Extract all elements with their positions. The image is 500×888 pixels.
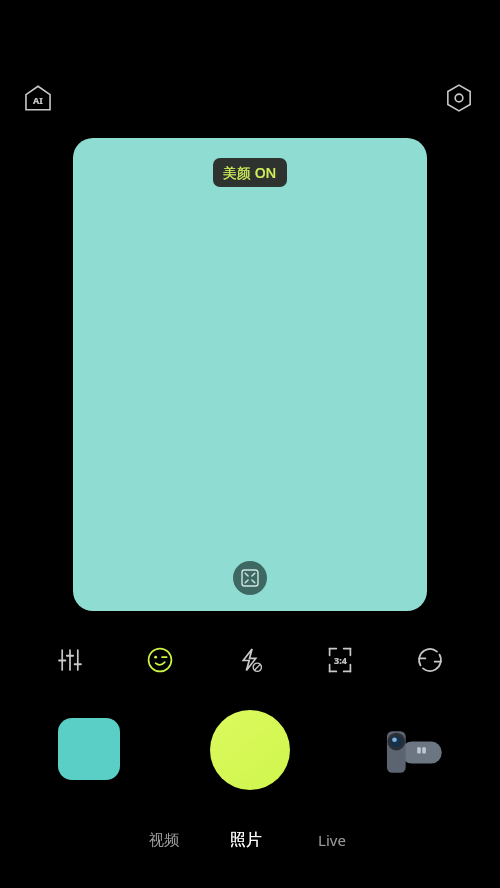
staticText: 照片 <box>230 830 262 850</box>
staticText: 3:4 <box>334 654 347 666</box>
button[interactable]: AI scene <box>16 76 60 120</box>
button[interactable]: 照片 <box>203 820 289 860</box>
button[interactable]: Expand viewfinder <box>233 561 267 595</box>
staticText: 美颜 ON <box>223 163 277 182</box>
button[interactable]: Beauty mode <box>138 638 182 682</box>
button[interactable]: Switch camera <box>408 638 452 682</box>
button[interactable]: 美颜 ON <box>73 138 427 611</box>
button[interactable]: External camera <box>372 722 448 782</box>
staticText: Live <box>318 830 346 850</box>
button[interactable]: Gallery <box>58 718 120 780</box>
button[interactable]: 美颜 ON <box>213 158 287 187</box>
button[interactable]: Flash off <box>228 638 272 682</box>
button[interactable]: Settings <box>437 76 481 120</box>
button[interactable]: Shutter <box>210 710 290 790</box>
button[interactable]: Live <box>289 820 375 860</box>
button[interactable]: Aspect ratio 3:4 <box>318 638 362 682</box>
staticText: 视频 <box>149 831 179 850</box>
button[interactable]: Adjust settings <box>48 638 92 682</box>
button[interactable]: 视频 <box>125 820 203 860</box>
staticText: AI <box>33 94 43 106</box>
